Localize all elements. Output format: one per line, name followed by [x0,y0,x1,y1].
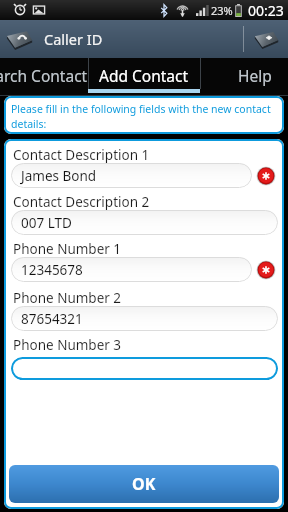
staticText: Help [238,65,272,86]
staticText: Contact Description 2 [13,193,150,211]
button[interactable]: 12345678 [11,257,252,282]
staticText: 23% [211,3,233,18]
button[interactable]: 007 LTD [11,210,278,235]
staticText: 00:23 [248,1,284,20]
staticText: Contact Description 1 [13,146,150,164]
staticText: 12345678 [21,261,83,279]
button[interactable]: Search Contact [0,58,88,96]
staticText: Please fill in the following fields with… [11,102,278,131]
staticText: Phone Number 2 [13,289,122,307]
staticText: OK [132,473,156,495]
button[interactable]: 87654321 [11,306,278,331]
staticText: James Bond [21,167,97,185]
staticText: Search Contact [0,65,88,86]
button[interactable]: OK [9,465,279,503]
staticText: 87654321 [21,310,83,328]
staticText: 007 LTD [21,214,72,232]
button[interactable] [11,357,278,380]
button[interactable]: Add Contact [88,58,200,96]
staticText: Add Contact [99,65,189,86]
staticText: Caller ID [44,29,103,49]
button[interactable]: Help [200,58,288,96]
button[interactable]: Plugins [244,20,288,58]
button[interactable]: James Bond [11,163,252,188]
staticText: Phone Number 3 [13,336,122,354]
staticText: Phone Number 1 [13,240,122,258]
